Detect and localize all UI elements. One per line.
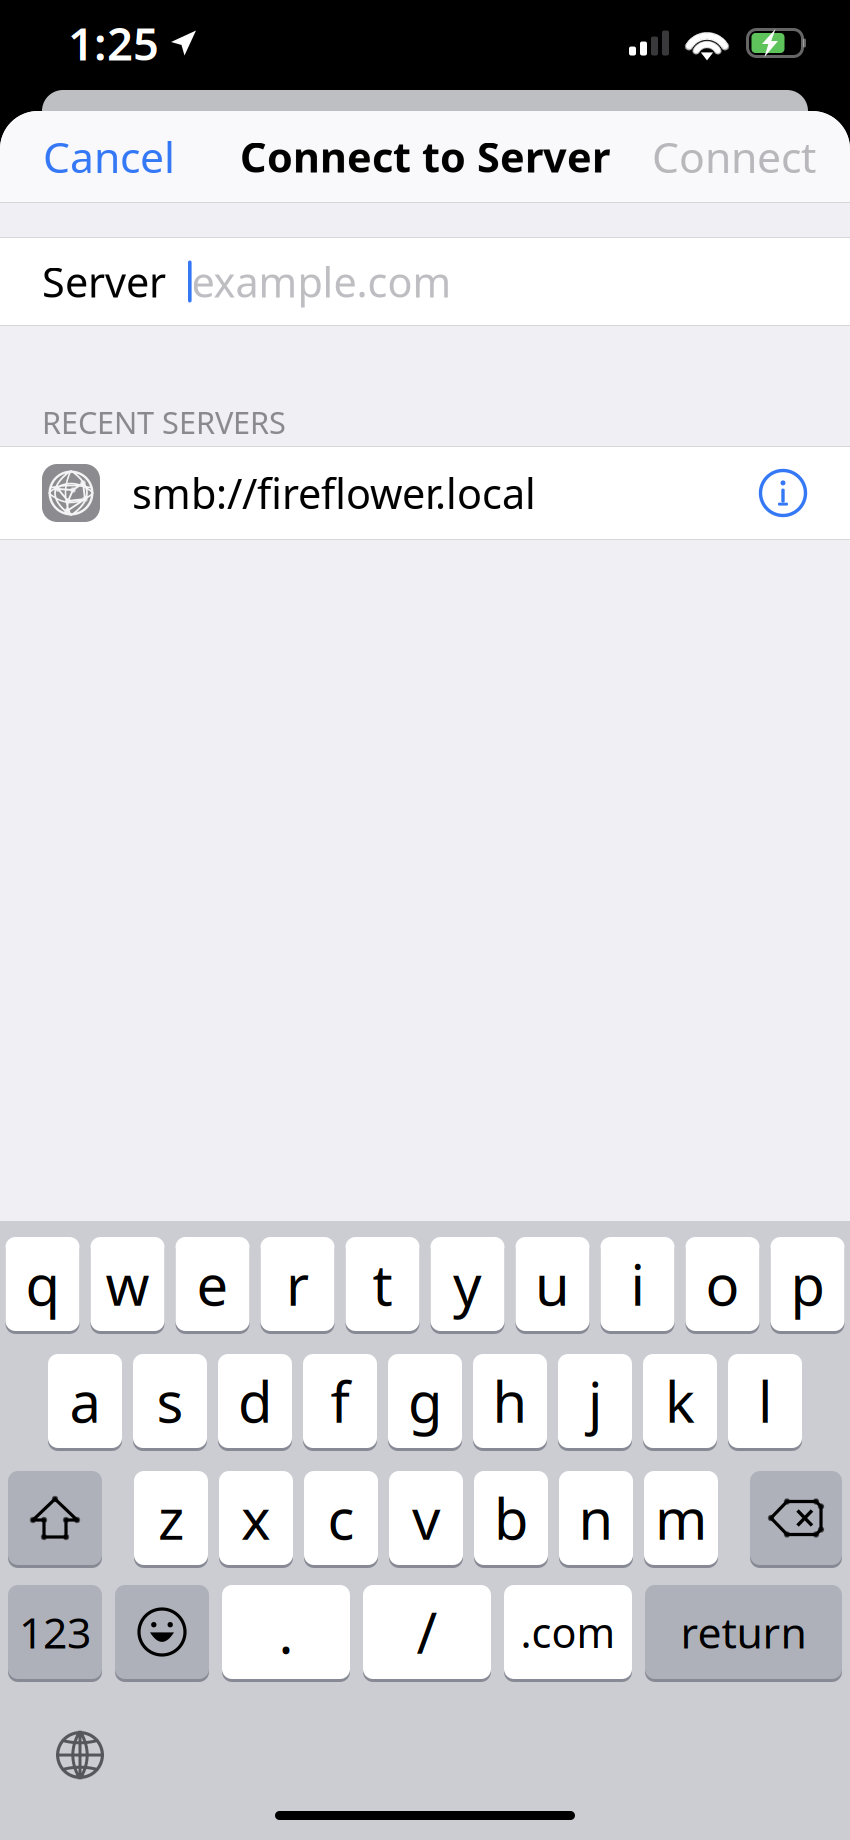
staticText: p bbox=[790, 1247, 824, 1321]
button[interactable]: z bbox=[134, 1471, 208, 1568]
staticText: f bbox=[330, 1364, 349, 1438]
staticText: u bbox=[535, 1247, 570, 1321]
button[interactable]: n bbox=[559, 1471, 633, 1568]
staticText: 123 bbox=[19, 1604, 91, 1660]
button[interactable]: .com bbox=[504, 1585, 632, 1682]
staticText: b bbox=[494, 1481, 528, 1555]
button[interactable]: . bbox=[222, 1585, 350, 1682]
button[interactable]: c bbox=[304, 1471, 378, 1568]
button[interactable]: i bbox=[600, 1237, 674, 1334]
button[interactable]: p bbox=[770, 1237, 844, 1334]
button[interactable]: m bbox=[644, 1471, 718, 1568]
button[interactable]: / bbox=[363, 1585, 491, 1682]
button[interactable]: x bbox=[219, 1471, 293, 1568]
button[interactable]: k bbox=[643, 1354, 717, 1451]
staticText: Server bbox=[42, 254, 166, 309]
staticText: g bbox=[408, 1364, 442, 1438]
staticText: r bbox=[286, 1247, 309, 1321]
button[interactable]: Emoji bbox=[115, 1585, 209, 1682]
button[interactable]: Cancel bbox=[37, 112, 181, 201]
button[interactable]: o bbox=[685, 1237, 759, 1334]
button[interactable]: g bbox=[388, 1354, 462, 1451]
staticText: e bbox=[196, 1247, 228, 1321]
button[interactable]: s bbox=[133, 1354, 207, 1451]
button[interactable]: Delete bbox=[750, 1471, 842, 1568]
staticText: m bbox=[655, 1481, 707, 1555]
staticText: Connect to Server bbox=[240, 129, 610, 184]
staticText: RECENT SERVERS bbox=[42, 402, 286, 442]
button[interactable]: y bbox=[430, 1237, 504, 1334]
button[interactable]: Connect bbox=[646, 112, 822, 201]
staticText: j bbox=[588, 1364, 602, 1438]
staticText: o bbox=[705, 1247, 739, 1321]
button[interactable]: a bbox=[48, 1354, 122, 1451]
staticText: return bbox=[680, 1604, 806, 1660]
button[interactable]: h bbox=[473, 1354, 547, 1451]
staticText: s bbox=[156, 1364, 183, 1438]
button[interactable]: e bbox=[175, 1237, 249, 1334]
staticText: .com bbox=[520, 1605, 615, 1659]
button[interactable]: q bbox=[5, 1237, 79, 1334]
staticText: i bbox=[630, 1247, 644, 1321]
button[interactable]: t bbox=[345, 1237, 419, 1334]
button[interactable]: Shift bbox=[8, 1471, 102, 1568]
button[interactable]: v bbox=[389, 1471, 463, 1568]
staticText: Cancel bbox=[43, 128, 175, 185]
button[interactable]: More info bbox=[755, 459, 811, 527]
staticText: Connect bbox=[652, 128, 816, 185]
staticText: d bbox=[238, 1364, 272, 1438]
staticText: example.com bbox=[192, 254, 452, 309]
staticText: w bbox=[105, 1247, 149, 1321]
button[interactable]: f bbox=[303, 1354, 377, 1451]
staticText: c bbox=[327, 1481, 354, 1555]
staticText: t bbox=[372, 1247, 392, 1321]
staticText: l bbox=[758, 1364, 772, 1438]
button[interactable]: d bbox=[218, 1354, 292, 1451]
button[interactable]: b bbox=[474, 1471, 548, 1568]
button[interactable]: smb://fireflower.local bbox=[0, 446, 850, 540]
staticText: z bbox=[158, 1481, 184, 1555]
staticText: h bbox=[492, 1364, 527, 1438]
button[interactable]: r bbox=[260, 1237, 334, 1334]
staticText: k bbox=[665, 1364, 695, 1438]
button[interactable]: return bbox=[645, 1585, 842, 1682]
button[interactable]: u bbox=[515, 1237, 589, 1334]
staticText: x bbox=[241, 1481, 271, 1555]
button[interactable]: w bbox=[90, 1237, 164, 1334]
button[interactable]: j bbox=[558, 1354, 632, 1451]
staticText: q bbox=[25, 1247, 59, 1321]
button[interactable]: 123 bbox=[8, 1585, 102, 1682]
button[interactable]: l bbox=[728, 1354, 802, 1451]
staticText: a bbox=[69, 1364, 100, 1438]
staticText: . bbox=[278, 1595, 293, 1669]
staticText: / bbox=[416, 1595, 437, 1669]
staticText: n bbox=[578, 1481, 613, 1555]
staticText: y bbox=[453, 1247, 482, 1321]
staticText: smb://fireflower.local bbox=[132, 466, 536, 520]
staticText: 1:25 bbox=[68, 13, 159, 73]
staticText: v bbox=[412, 1481, 440, 1555]
button[interactable]: Next keyboard bbox=[45, 1720, 116, 1791]
